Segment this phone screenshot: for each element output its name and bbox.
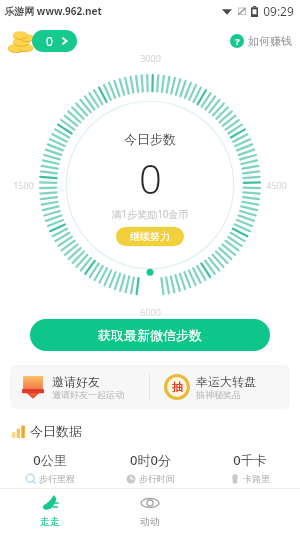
- staticText: 抽神秘奖品: [196, 389, 241, 400]
- staticText: 3000: [140, 52, 161, 64]
- button[interactable]: 继续努力: [116, 227, 184, 246]
- staticText: 09:29: [263, 3, 294, 19]
- staticText: 获取最新微信步数: [98, 327, 202, 343]
- staticText: 今日步数: [124, 131, 176, 147]
- button[interactable]: 抽: [150, 365, 290, 409]
- staticText: 4500: [266, 179, 287, 191]
- staticText: 步行里程: [39, 473, 75, 484]
- staticText: 0: [139, 151, 162, 205]
- button[interactable]: 0时0分: [100, 451, 200, 484]
- staticText: 热门活动: [30, 498, 82, 514]
- staticText: 今日数据: [30, 423, 82, 439]
- staticText: 邀请好友: [52, 374, 100, 389]
- staticText: 动动: [140, 515, 160, 528]
- button[interactable]: 邀请好友: [10, 365, 149, 409]
- staticText: 满1步奖励10金币: [111, 207, 189, 221]
- staticText: 继续努力: [130, 230, 170, 243]
- staticText: 卡路里: [243, 473, 270, 484]
- button[interactable]: 0公里: [0, 451, 100, 484]
- staticText: 0千卡: [233, 451, 267, 469]
- staticText: 乐游网 www.962.net: [4, 4, 102, 18]
- staticText: 0公里: [33, 451, 67, 469]
- staticText: 邀请好友一起运动: [52, 389, 124, 400]
- button[interactable]: ?: [230, 34, 292, 48]
- staticText: 幸运大转盘: [196, 374, 256, 389]
- staticText: 抽: [172, 380, 183, 394]
- button[interactable]: 金币: [6, 28, 85, 54]
- staticText: 步行时间: [139, 473, 175, 484]
- button[interactable]: 获取最新微信步数: [30, 319, 270, 351]
- staticText: 走走: [40, 515, 60, 528]
- staticText: ?: [235, 35, 240, 47]
- button[interactable]: 动动: [100, 489, 200, 533]
- staticText: 0: [46, 33, 53, 49]
- staticText: 如何赚钱: [248, 34, 292, 48]
- staticText: 6000: [140, 306, 161, 318]
- staticText: 1500: [13, 179, 34, 191]
- staticText: 0时0分: [130, 451, 171, 469]
- button[interactable]: 0千卡: [200, 451, 300, 484]
- button[interactable]: 走走: [0, 489, 100, 533]
